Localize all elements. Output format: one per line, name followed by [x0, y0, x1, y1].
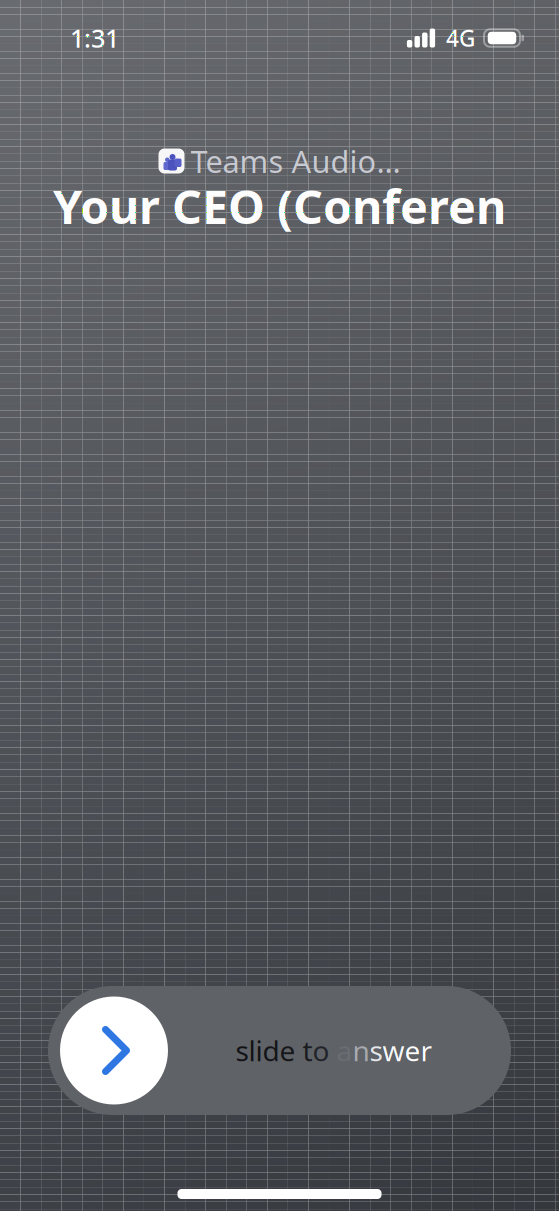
staticText: t	[302, 1032, 312, 1069]
staticText: s	[369, 1032, 382, 1069]
staticText: e	[404, 1032, 420, 1069]
staticText: w	[382, 1032, 404, 1069]
staticText: Your CEO (Conferen	[53, 175, 506, 237]
button[interactable]: s	[48, 986, 511, 1115]
staticText: o	[312, 1032, 329, 1069]
staticText: a	[336, 1032, 352, 1069]
staticText: i	[255, 1032, 262, 1069]
staticText: n	[352, 1032, 369, 1069]
staticText: Teams Audio...	[190, 141, 400, 181]
staticText: s	[235, 1032, 248, 1069]
staticText: d	[262, 1032, 279, 1069]
staticText: e	[279, 1032, 295, 1069]
staticText: 4G	[446, 23, 475, 53]
staticText: r	[420, 1032, 432, 1069]
staticText: l	[248, 1032, 255, 1069]
staticText: 1:31	[70, 21, 119, 55]
